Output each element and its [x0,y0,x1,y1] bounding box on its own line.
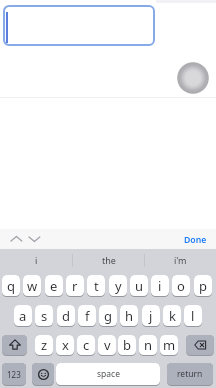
staticText: y [115,277,122,295]
button[interactable]: the [73,249,144,271]
staticText: q [7,277,15,295]
button[interactable]: j [142,305,160,327]
button[interactable]: b [118,335,136,356]
button[interactable]: o [172,275,190,297]
button[interactable] [3,5,155,46]
staticText: i'm [174,254,187,266]
staticText: k [169,307,176,325]
staticText: p [199,277,207,295]
staticText: o [177,277,185,295]
button[interactable]: w [23,275,41,297]
button[interactable]: z [35,335,53,356]
button[interactable]: g [99,305,117,327]
button[interactable]: r [66,275,84,297]
staticText: w [27,277,38,295]
button[interactable]: l [184,305,202,327]
staticText: a [19,307,27,325]
button[interactable]: h [120,305,138,327]
staticText: c [83,336,90,354]
staticText: z [41,336,48,354]
button[interactable]: u [130,275,148,297]
button[interactable] [27,235,42,243]
button[interactable]: m [160,335,178,356]
button[interactable]: Done [184,234,207,246]
staticText: l [191,307,195,325]
staticText: space [97,368,120,380]
staticText: return [177,368,203,380]
button[interactable]: x [56,335,74,356]
button[interactable]: k [163,305,181,327]
staticText: u [135,277,144,295]
button[interactable]: i'm [145,249,216,271]
button[interactable]: 123 [2,363,26,386]
button[interactable]: f [78,305,96,327]
button[interactable]: space [56,363,160,386]
staticText: the [102,254,116,266]
staticText: n [144,336,153,354]
button[interactable] [186,335,214,356]
button[interactable]: a [14,305,32,327]
staticText: m [163,336,176,354]
staticText: Done [184,234,207,246]
staticText: f [85,307,90,325]
staticText: s [41,307,48,325]
button[interactable]: q [2,275,20,297]
button[interactable] [32,363,54,386]
button[interactable] [177,62,209,94]
button[interactable] [9,235,24,243]
staticText: r [72,277,78,295]
staticText: t [94,277,99,295]
staticText: v [104,336,111,354]
button[interactable] [2,335,27,356]
button[interactable]: s [35,305,53,327]
staticText: i [158,277,162,295]
staticText: g [104,307,112,325]
button[interactable]: i [151,275,169,297]
button[interactable]: c [77,335,95,356]
button[interactable]: i [0,249,72,271]
staticText: i [35,254,38,266]
button[interactable]: return [167,363,213,386]
button[interactable]: y [109,275,127,297]
staticText: x [62,336,69,354]
staticText: d [62,307,70,325]
button[interactable]: v [98,335,116,356]
staticText: 123 [7,369,21,380]
staticText: b [123,336,131,354]
button[interactable]: d [57,305,75,327]
button[interactable]: n [139,335,157,356]
button[interactable]: p [194,275,212,297]
button[interactable]: t [87,275,105,297]
staticText: j [149,307,153,325]
button[interactable]: e [45,275,63,297]
staticText: e [50,277,58,295]
staticText: h [125,307,134,325]
